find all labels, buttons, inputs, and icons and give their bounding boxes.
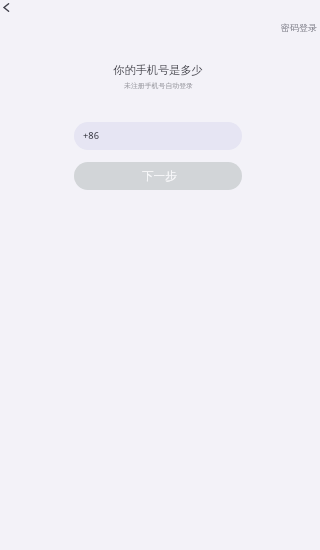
staticText: 密码登录 (281, 22, 317, 33)
staticText: 你的手机号是多少 (113, 63, 203, 77)
button[interactable]: 密码登录 (275, 20, 320, 35)
button[interactable]: 下一步 (74, 162, 242, 190)
staticText: 未注册手机号自动登录 (124, 81, 193, 90)
button[interactable]: +86 (74, 122, 242, 150)
button[interactable]: Back (0, 0, 24, 18)
staticText: +86 (83, 129, 99, 142)
staticText: 下一步 (142, 169, 177, 183)
